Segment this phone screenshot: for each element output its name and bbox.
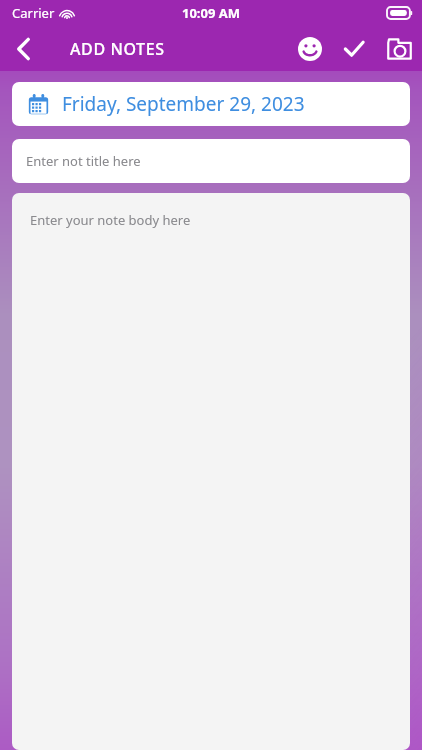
staticText: Carrier (12, 4, 55, 22)
button[interactable]: Take photo (376, 26, 422, 71)
button[interactable]: Emoji (288, 27, 332, 71)
button[interactable]: Save note (332, 27, 376, 71)
button[interactable]: Back (0, 26, 46, 71)
staticText: 10:09 AM (182, 4, 241, 22)
staticText: ADD NOTES (70, 38, 165, 60)
button[interactable]: Friday, September 29, 2023 (12, 82, 410, 126)
staticText: Friday, September 29, 2023 (62, 91, 305, 117)
button[interactable]: Enter not title here (12, 139, 410, 183)
staticText: Enter not title here (26, 152, 141, 170)
staticText: Enter your note body here (30, 211, 191, 229)
button[interactable]: Enter your note body here (12, 193, 410, 750)
